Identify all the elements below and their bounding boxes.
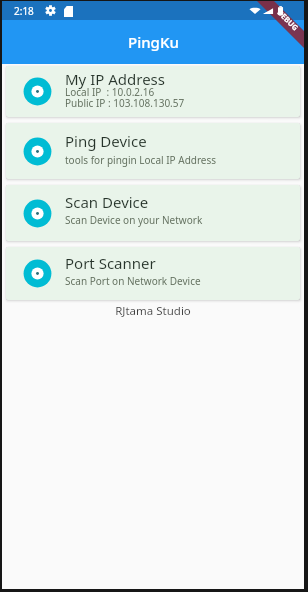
- staticText: RJtama Studio: [2, 303, 304, 319]
- button[interactable]: Ping Device: [6, 123, 300, 179]
- button[interactable]: Port Scanner: [6, 247, 300, 300]
- staticText: Scan Port on Network Device: [65, 274, 201, 288]
- staticText: Port Scanner: [65, 253, 156, 273]
- staticText: PingKu: [128, 32, 179, 52]
- staticText: 2:18: [14, 4, 34, 18]
- staticText: tools for pingin Local IP Address: [65, 153, 217, 167]
- button[interactable]: My IP Address: [6, 66, 300, 117]
- staticText: My IP Address: [65, 69, 165, 89]
- staticText: Scan Device on your Network: [65, 213, 203, 227]
- button[interactable]: Scan Device: [6, 185, 300, 241]
- staticText: Public IP : 103.108.130.57: [65, 96, 185, 110]
- staticText: DEBUG: [275, 7, 301, 33]
- staticText: Local IP : 10.0.2.16: [65, 85, 155, 99]
- staticText: Scan Device: [65, 192, 149, 212]
- staticText: Ping Device: [65, 131, 147, 151]
